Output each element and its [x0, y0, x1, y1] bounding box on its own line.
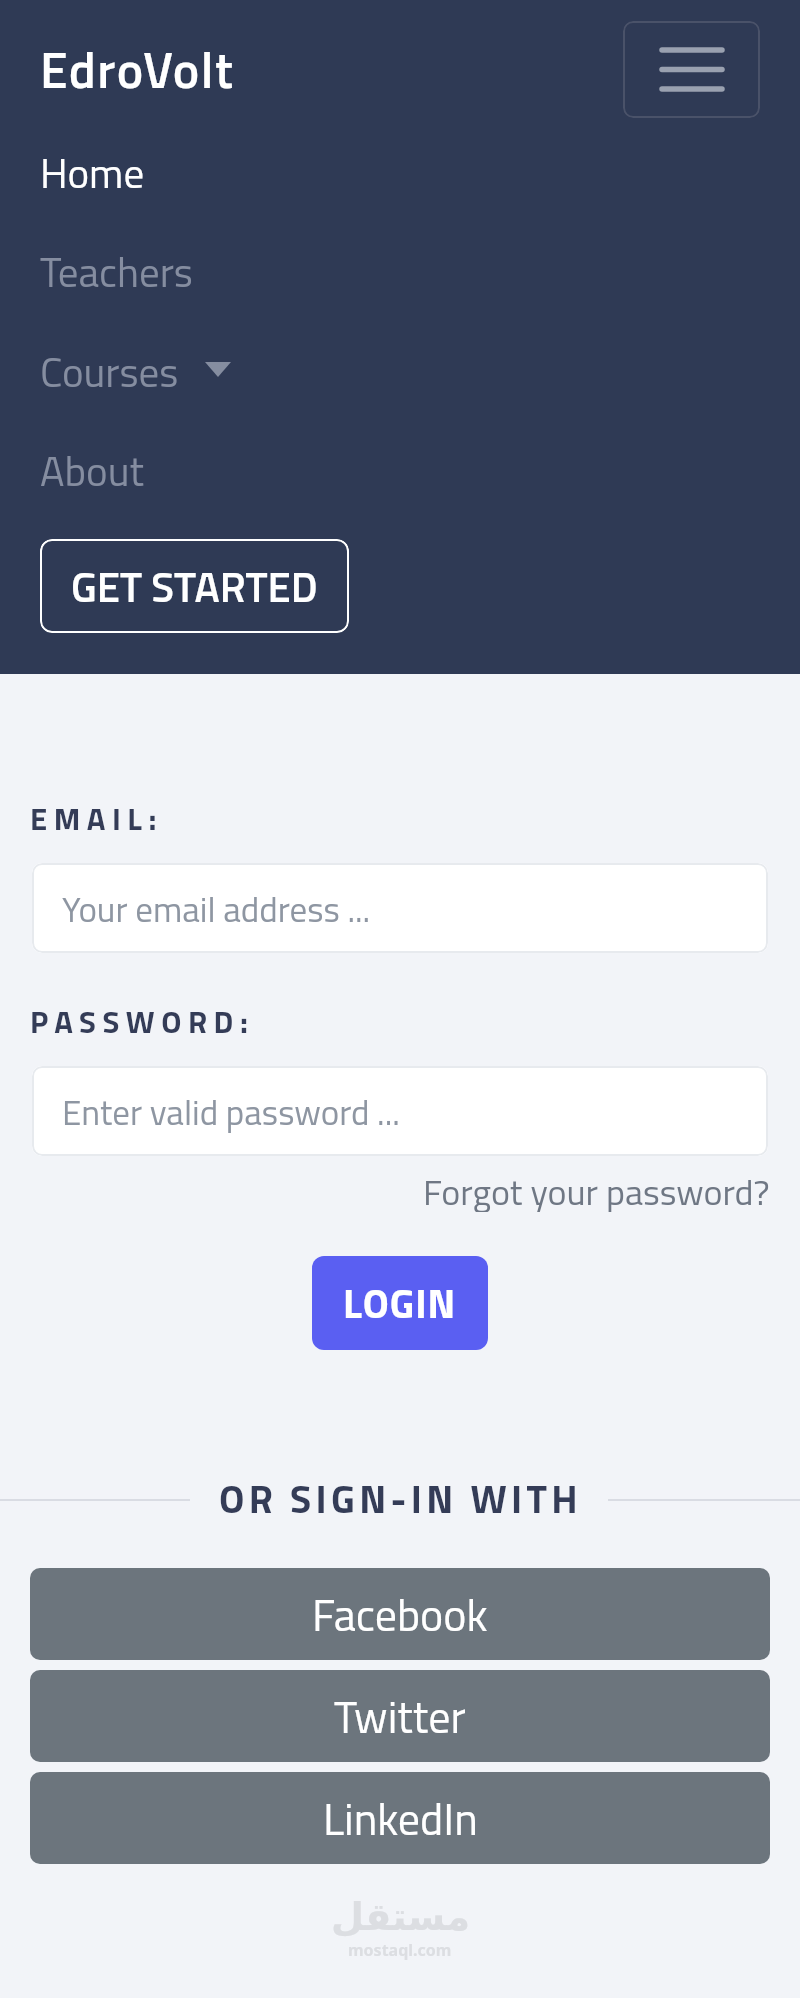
staticText: Your email address ... — [62, 882, 371, 935]
button[interactable]: LinkedIn — [30, 1772, 770, 1864]
staticText: OR SIGN-IN WITH — [219, 1469, 582, 1517]
staticText: EMAIL: — [30, 795, 163, 842]
staticText: Teachers — [40, 241, 193, 301]
button[interactable]: Your email address ... — [32, 863, 768, 953]
button[interactable]: Courses — [40, 341, 179, 401]
button[interactable]: Enter valid password ... — [32, 1066, 768, 1156]
staticText: مستقل — [331, 1895, 470, 1939]
staticText: EdroVolt — [40, 31, 235, 107]
staticText: GET STARTED — [71, 554, 318, 618]
staticText: Home — [40, 142, 145, 202]
button[interactable] — [623, 21, 760, 118]
staticText: About — [40, 440, 144, 500]
staticText: PASSWORD: — [30, 998, 255, 1045]
button[interactable]: Home — [40, 142, 145, 202]
button[interactable]: GET STARTED — [40, 539, 349, 633]
staticText: Twitter — [334, 1683, 466, 1750]
button[interactable]: LOGIN — [312, 1256, 488, 1350]
button[interactable]: About — [40, 440, 144, 500]
staticText: Courses — [40, 341, 179, 401]
staticText: Enter valid password ... — [62, 1085, 400, 1138]
button[interactable]: Facebook — [30, 1568, 770, 1660]
button[interactable]: Teachers — [40, 241, 193, 301]
button[interactable]: Forgot your password? — [423, 1164, 770, 1212]
button[interactable]: Twitter — [30, 1670, 770, 1762]
staticText: LinkedIn — [323, 1785, 478, 1852]
staticText: Facebook — [312, 1581, 488, 1648]
staticText: LOGIN — [343, 1273, 457, 1334]
staticText: mostaql.com — [348, 1939, 452, 1961]
